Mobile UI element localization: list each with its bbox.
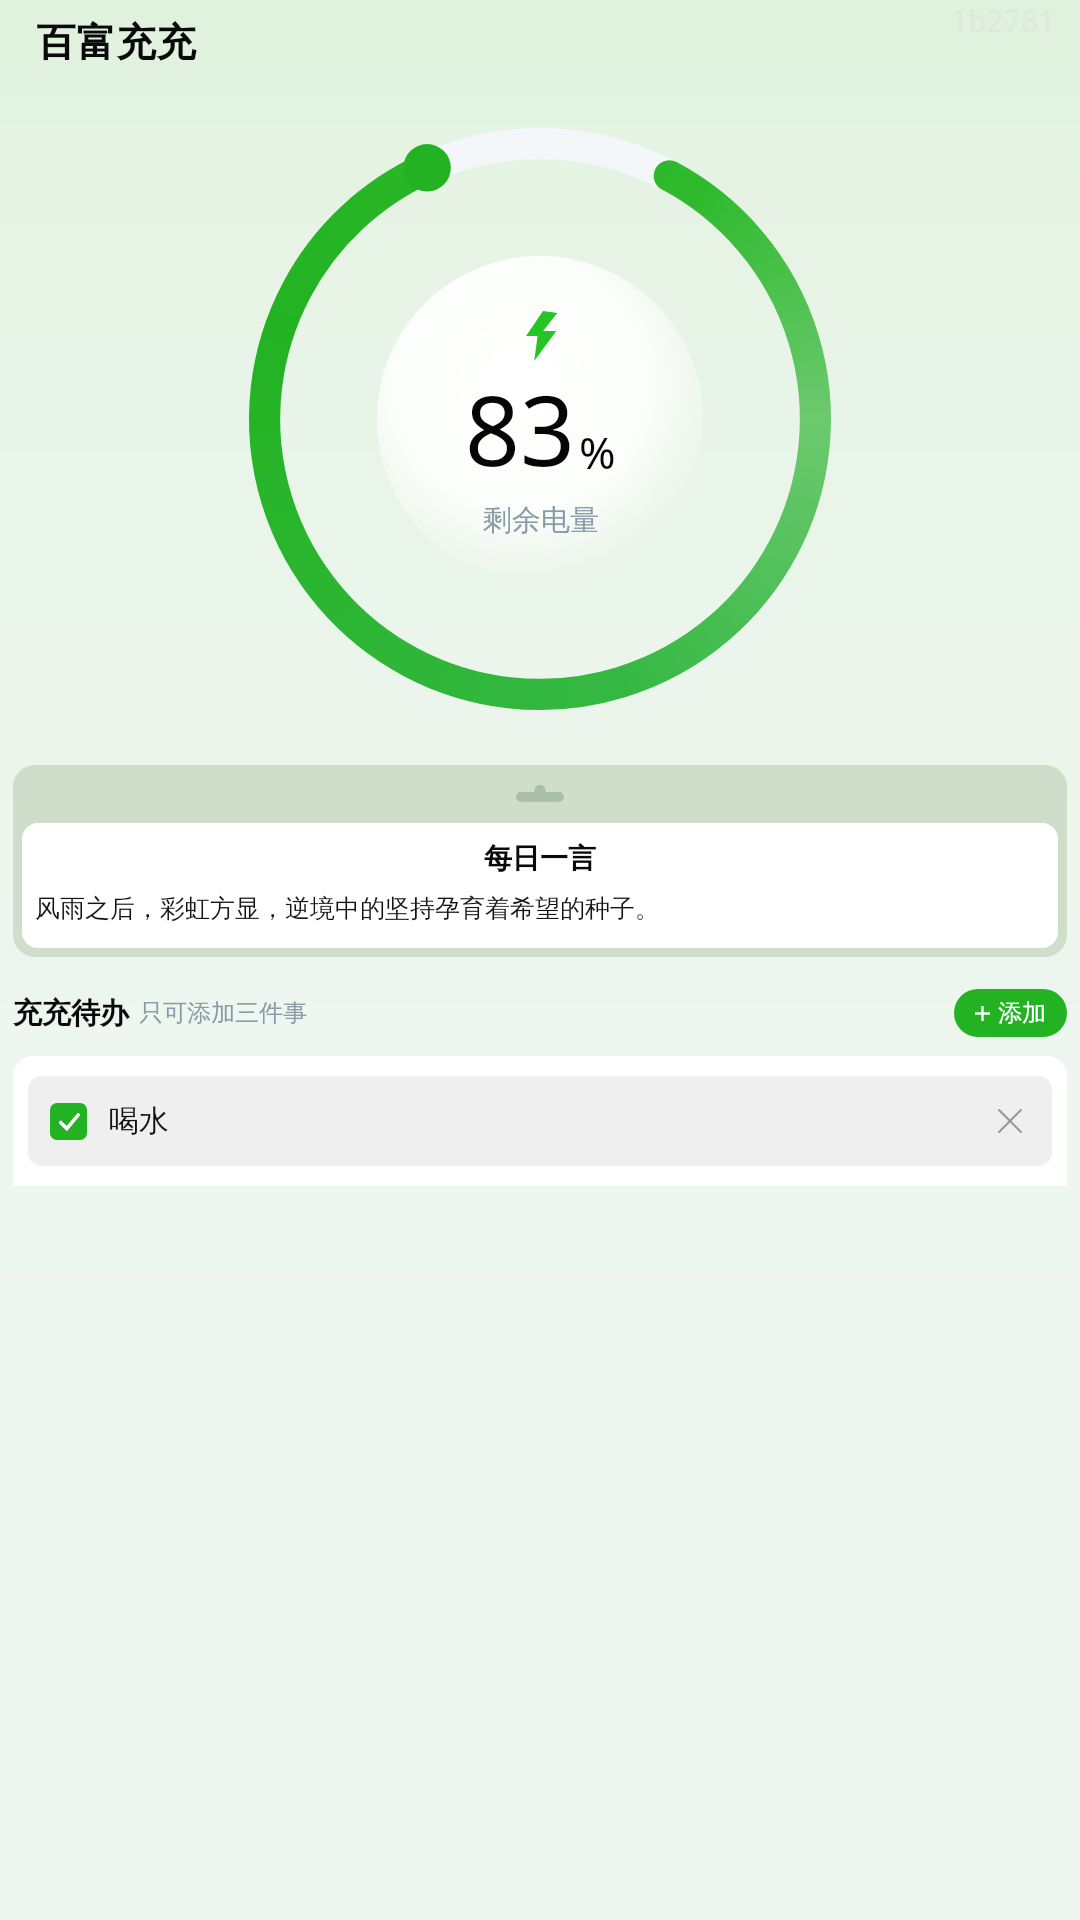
staticText: 只可添加三件事 <box>139 998 307 1028</box>
button[interactable]: 每日一言 <box>22 823 1058 948</box>
staticText: 百富充充 <box>36 18 196 67</box>
button[interactable]: Completed <box>50 1103 87 1140</box>
staticText: 喝水 <box>109 1102 169 1140</box>
staticText: 添加 <box>998 998 1046 1028</box>
staticText: 每日一言 <box>484 841 596 876</box>
button[interactable]: 添加 <box>954 989 1067 1037</box>
button[interactable]: Delete <box>990 1101 1030 1141</box>
button[interactable]: Completed <box>28 1076 1052 1166</box>
staticText: 1b2781 <box>951 0 1056 41</box>
staticText: 剩余电量 <box>483 502 599 539</box>
staticText: 83 <box>465 363 575 494</box>
button[interactable]: 每日一言 <box>13 765 1067 957</box>
staticText: 充充待办 <box>13 995 129 1032</box>
staticText: % <box>579 422 616 482</box>
staticText: 风雨之后，彩虹方显，逆境中的坚持孕育着希望的种子。 <box>35 893 660 924</box>
